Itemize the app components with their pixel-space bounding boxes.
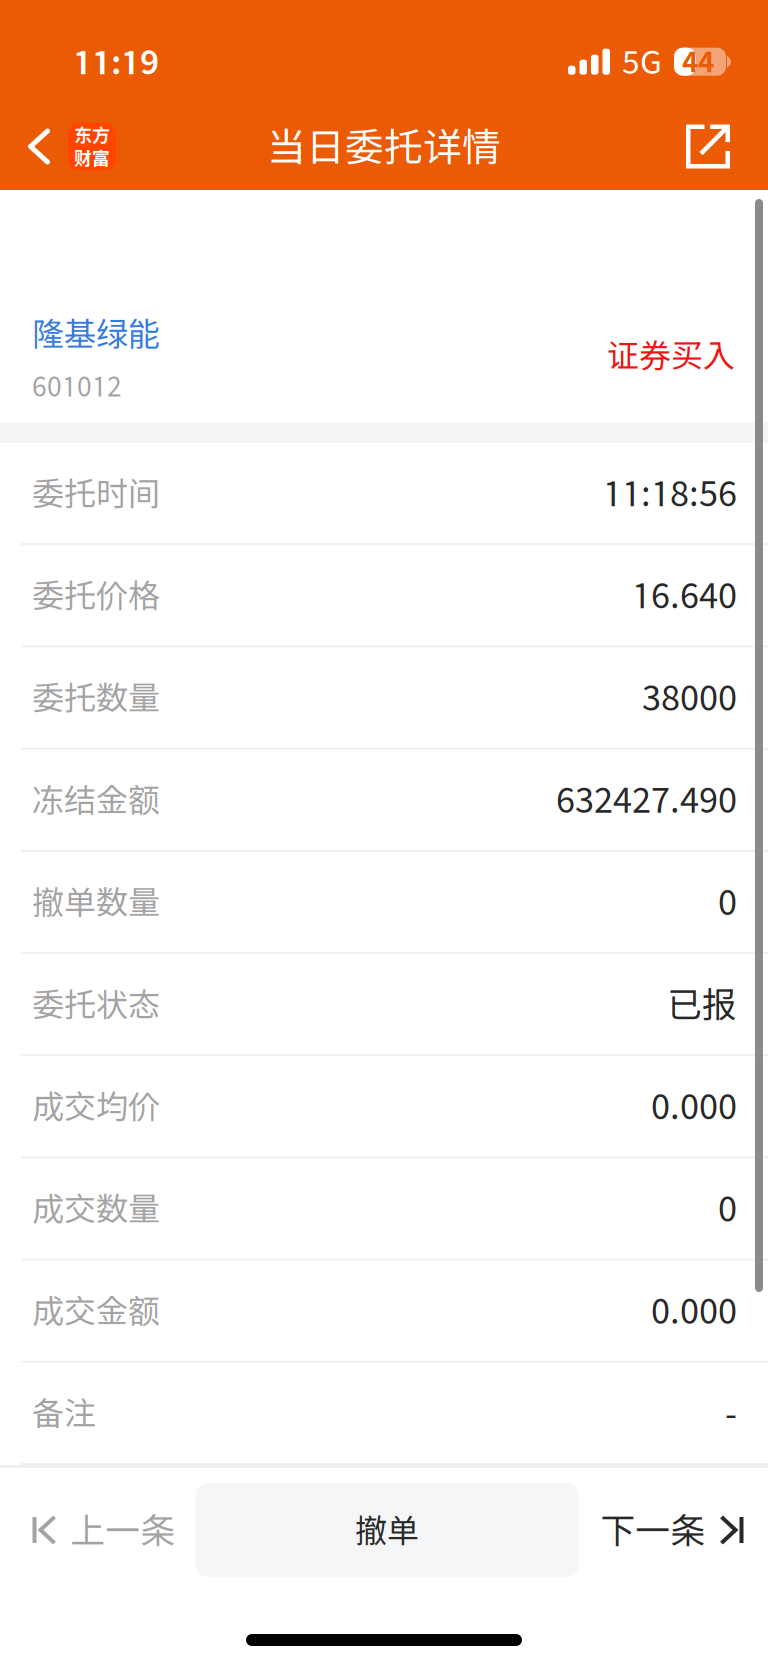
button[interactable]: 上一条 (0, 1465, 195, 1595)
staticText: 冻结金额 (32, 781, 160, 818)
staticText: 上一条 (70, 1509, 175, 1550)
staticText: 证券买入 (607, 336, 735, 374)
button[interactable]: Back (0, 103, 132, 190)
staticText: 0 (718, 881, 737, 922)
staticText: 601012 (32, 370, 122, 402)
staticText: 备注 (32, 1394, 96, 1432)
staticText: 成交均价 (32, 1087, 160, 1125)
staticText: 16.640 (632, 575, 737, 616)
staticText: 当日委托详情 (267, 124, 501, 169)
staticText: 5G (622, 43, 662, 81)
staticText: 隆基绿能 (32, 315, 160, 353)
staticText: 撤单数量 (32, 883, 160, 921)
staticText: 东方 (74, 124, 110, 145)
staticText: 632427.490 (556, 779, 737, 820)
staticText: 38000 (642, 677, 737, 718)
staticText: 0 (718, 1188, 737, 1229)
staticText: 0.000 (651, 1290, 737, 1331)
button[interactable]: 撤单 (195, 1483, 578, 1577)
staticText: 委托数量 (32, 678, 160, 716)
staticText: 撤单 (355, 1511, 419, 1549)
button[interactable]: Share (662, 103, 768, 190)
staticText: 11:18:56 (603, 472, 737, 513)
staticText: - (725, 1392, 737, 1433)
staticText: 成交金额 (32, 1292, 160, 1329)
staticText: 11:19 (73, 42, 159, 81)
staticText: 44 (682, 45, 714, 78)
staticText: 委托价格 (32, 576, 160, 614)
button[interactable]: 下一条 (580, 1465, 768, 1595)
staticText: 已报 (667, 983, 737, 1024)
staticText: 下一条 (600, 1509, 705, 1550)
staticText: 0.000 (651, 1086, 737, 1127)
staticText: 委托状态 (32, 985, 160, 1023)
staticText: 成交数量 (32, 1189, 160, 1227)
staticText: 财富 (74, 147, 110, 169)
staticText: 委托时间 (32, 474, 160, 512)
